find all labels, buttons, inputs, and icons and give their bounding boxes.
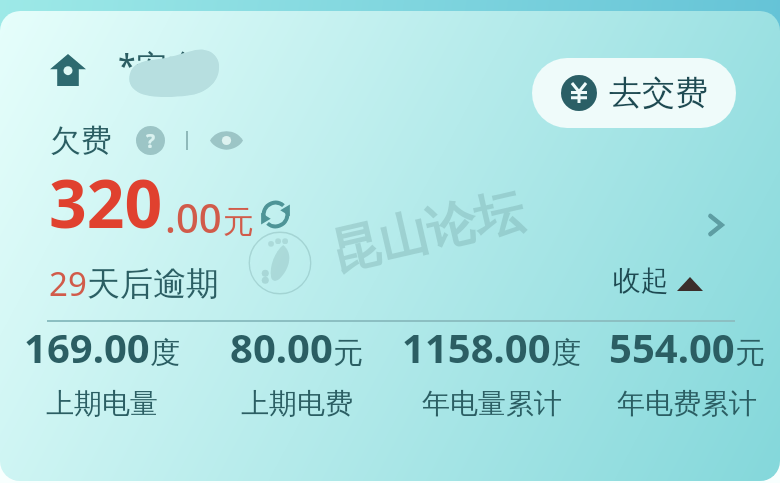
button[interactable]: 去交费 [532, 58, 736, 128]
staticText: .00 [165, 190, 222, 244]
button[interactable]: Home [50, 54, 86, 86]
staticText: 天后逾期 [87, 263, 219, 305]
staticText: 欠费 [50, 121, 112, 160]
button[interactable]: 80.00 [199, 320, 394, 421]
button[interactable]: 1158.00 [394, 320, 589, 421]
staticText: 收起 [613, 263, 669, 298]
staticText: 年电费累计 [617, 386, 757, 421]
staticText: 554.00 [609, 320, 735, 374]
staticText: 上期电费 [241, 386, 353, 421]
staticText: 度 [551, 334, 581, 372]
staticText: 元 [223, 202, 254, 241]
button[interactable]: Help [136, 126, 165, 155]
staticText: 昆山论坛 [325, 180, 530, 284]
staticText: 年电量累计 [422, 386, 562, 421]
button[interactable]: 收起 [613, 263, 703, 298]
staticText: 1158.00 [402, 320, 551, 374]
button[interactable]: 169.00 [4, 320, 199, 421]
button[interactable]: More details [706, 210, 726, 240]
staticText: 上期电量 [46, 386, 158, 421]
staticText: 29 [49, 261, 87, 306]
staticText: 元 [735, 334, 765, 372]
button[interactable]: Toggle visibility [210, 130, 243, 151]
staticText: ? [146, 128, 156, 154]
staticText: 元 [333, 334, 363, 372]
button[interactable]: Refresh [261, 200, 290, 229]
staticText: 320 [49, 157, 163, 247]
button[interactable]: 554.00 [589, 320, 780, 421]
staticText: *安东 [118, 44, 200, 88]
staticText: 80.00 [230, 320, 333, 374]
staticText: 去交费 [609, 72, 708, 114]
staticText: 度 [150, 334, 180, 372]
staticText: 169.00 [24, 320, 150, 374]
